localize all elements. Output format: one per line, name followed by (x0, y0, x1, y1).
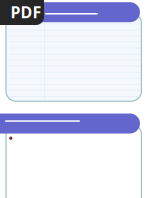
button[interactable]: Page 1 (6, 13, 141, 101)
button[interactable]: PDF document (0, 0, 44, 25)
staticText: PDF (10, 1, 41, 23)
button[interactable]: Page 2 (6, 124, 141, 198)
